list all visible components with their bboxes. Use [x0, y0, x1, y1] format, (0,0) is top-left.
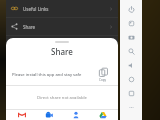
button[interactable]: Contacts: [69, 110, 83, 120]
button[interactable]: Volume: [120, 58, 142, 72]
button[interactable]: Zoom: [120, 44, 142, 58]
staticText: Copy: [99, 78, 107, 82]
staticText: Share: [23, 24, 109, 30]
button[interactable]: Overview: [120, 86, 142, 100]
staticText: Useful Links: [23, 6, 109, 12]
button[interactable]: Share: [6, 18, 118, 35]
button[interactable]: Please install this app and stay safe: [6, 64, 118, 85]
staticText: Share: [51, 46, 73, 57]
button[interactable]: Home: [120, 72, 142, 86]
button[interactable]: Rotate: [120, 16, 142, 30]
staticText: Please install this app and stay safe: [12, 72, 94, 78]
button[interactable]: Power: [120, 2, 142, 16]
button[interactable]: Copy: [94, 68, 112, 82]
staticText: Rate this App: [23, 42, 109, 48]
staticText: Direct share not available: [37, 95, 87, 101]
button[interactable]: Rate this App: [6, 36, 118, 53]
button[interactable]: Meet: [42, 110, 56, 120]
button[interactable]: Screenshot: [120, 30, 142, 44]
button[interactable]: Drive: [96, 110, 110, 120]
button[interactable]: Gmail: [15, 110, 29, 120]
button[interactable]: More: [120, 100, 142, 114]
button[interactable]: Useful Links: [6, 0, 118, 17]
